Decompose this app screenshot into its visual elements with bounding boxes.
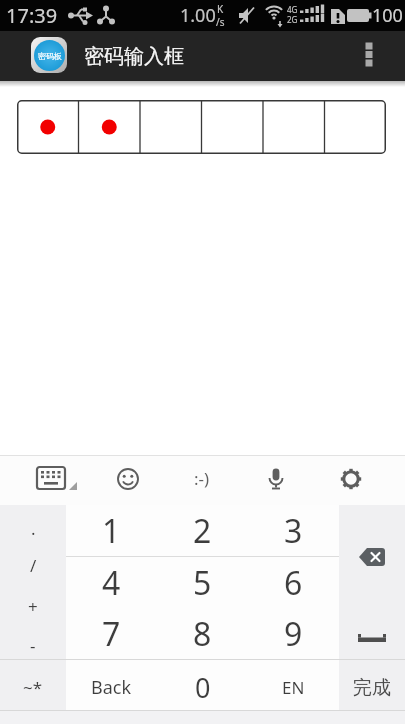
button[interactable] — [318, 454, 384, 503]
staticText: . — [31, 517, 36, 540]
staticText: 17:39 — [6, 2, 58, 29]
staticText: 0 — [195, 669, 211, 706]
staticText: 密码板 — [38, 51, 62, 61]
staticText: 4G — [287, 4, 298, 15]
staticText: 100 — [372, 3, 403, 28]
button[interactable] — [95, 454, 161, 503]
button[interactable]: 完成 — [339, 662, 405, 713]
button[interactable]: / — [0, 546, 66, 585]
staticText: 密码输入框 — [84, 44, 184, 69]
staticText: ~* — [23, 676, 43, 699]
staticText: 完成 — [353, 676, 391, 700]
button[interactable] — [243, 454, 309, 503]
button[interactable]: 3 — [248, 505, 339, 556]
button[interactable]: 8 — [157, 608, 248, 659]
staticText: 7 — [102, 612, 121, 656]
button[interactable]: . — [0, 509, 66, 548]
staticText: 2G — [287, 14, 298, 25]
button[interactable]: ~* — [0, 662, 66, 713]
staticText: 6 — [284, 561, 303, 605]
button[interactable]: 1 — [66, 505, 157, 556]
staticText: 3 — [284, 509, 303, 553]
button[interactable]: 4 — [66, 557, 157, 608]
button[interactable]: 5 — [157, 557, 248, 608]
button[interactable] — [339, 505, 405, 608]
button[interactable]: 2 — [157, 505, 248, 556]
staticText: 1 — [102, 509, 121, 553]
staticText: 2 — [193, 509, 212, 553]
button[interactable]: :-) — [169, 454, 235, 503]
button[interactable]: 6 — [248, 557, 339, 608]
button[interactable]: + — [0, 587, 66, 626]
staticText: + — [28, 595, 38, 618]
staticText: 9 — [284, 612, 303, 656]
button[interactable]: EN — [248, 662, 339, 713]
staticText: 5 — [193, 561, 212, 605]
button[interactable]: Back — [66, 662, 157, 713]
button[interactable] — [17, 100, 386, 154]
button[interactable]: 7 — [66, 608, 157, 659]
staticText: EN — [282, 676, 305, 699]
button[interactable]: - — [0, 626, 66, 665]
button[interactable]: 0 — [157, 662, 248, 713]
button[interactable]: 9 — [248, 608, 339, 659]
staticText: Back — [91, 675, 132, 700]
button[interactable] — [339, 612, 405, 663]
staticText: K — [217, 2, 224, 16]
staticText: 8 — [193, 612, 212, 656]
button[interactable] — [352, 34, 386, 78]
staticText: 1.00 — [180, 3, 216, 28]
staticText: /s — [216, 15, 225, 29]
staticText: :-) — [194, 467, 210, 490]
button[interactable] — [21, 454, 93, 503]
staticText: - — [30, 634, 36, 657]
staticText: 4 — [102, 561, 121, 605]
staticText: / — [30, 554, 37, 577]
